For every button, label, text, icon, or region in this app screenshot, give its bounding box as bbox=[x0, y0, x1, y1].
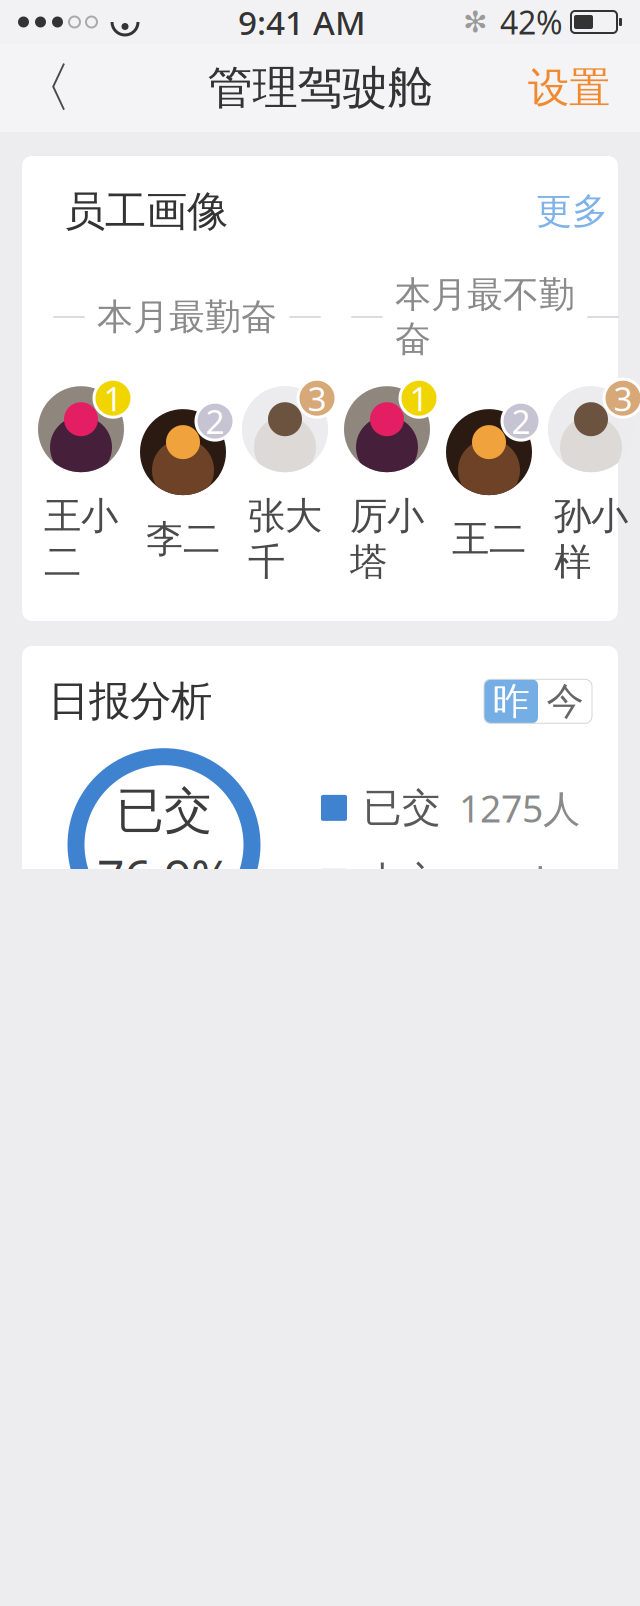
button[interactable]: 今 bbox=[538, 679, 592, 723]
button[interactable]: 1 bbox=[30, 379, 132, 585]
staticText: 9:41 AM bbox=[238, 0, 366, 44]
staticText: 已交 bbox=[116, 781, 212, 840]
staticText: 42% bbox=[500, 1, 563, 43]
staticText: 李二 bbox=[146, 516, 220, 562]
staticText: 已交 bbox=[363, 784, 441, 832]
staticText: 孙小样 bbox=[554, 493, 628, 585]
button[interactable]: 1 bbox=[336, 379, 438, 585]
staticText: 更多 bbox=[536, 189, 608, 233]
staticText: 本月最不勤奋 bbox=[395, 273, 575, 361]
staticText: 1 bbox=[409, 376, 428, 420]
staticText: 3 bbox=[613, 376, 632, 420]
button[interactable]: 3 bbox=[540, 379, 640, 585]
staticText: 76.9% bbox=[97, 844, 231, 908]
staticText: 3 bbox=[307, 376, 326, 420]
staticText: 日报分析 bbox=[48, 676, 212, 727]
button[interactable]: 3 bbox=[234, 379, 336, 585]
staticText: 1275人 bbox=[459, 783, 580, 833]
staticText: 厉小塔 bbox=[350, 493, 424, 585]
staticText: 员工画像 bbox=[64, 186, 228, 237]
staticText: 今 bbox=[546, 678, 583, 724]
staticText: 2 bbox=[205, 399, 224, 443]
staticText: 王二 bbox=[452, 516, 526, 562]
staticText: 123人 bbox=[459, 857, 559, 906]
staticText: 2 bbox=[511, 399, 530, 443]
button[interactable]: 返回 bbox=[8, 51, 82, 125]
staticText: ✻ bbox=[463, 5, 488, 39]
staticText: 1 bbox=[103, 376, 122, 420]
staticText: 王小二 bbox=[44, 493, 118, 585]
button[interactable]: 更多 bbox=[536, 189, 608, 233]
staticText: 未交 bbox=[363, 858, 441, 905]
staticText: 本月最勤奋 bbox=[97, 295, 277, 339]
button[interactable]: 2 bbox=[438, 402, 540, 562]
button[interactable]: 设置 bbox=[506, 51, 632, 125]
staticText: 张大千 bbox=[248, 493, 322, 585]
staticText: 〈 bbox=[18, 55, 71, 121]
staticText: 设置 bbox=[528, 63, 610, 113]
button[interactable]: 2 bbox=[132, 402, 234, 562]
staticText: 管理驾驶舱 bbox=[207, 60, 432, 116]
staticText: 昨 bbox=[492, 678, 529, 724]
button[interactable]: 昨 bbox=[484, 679, 538, 723]
